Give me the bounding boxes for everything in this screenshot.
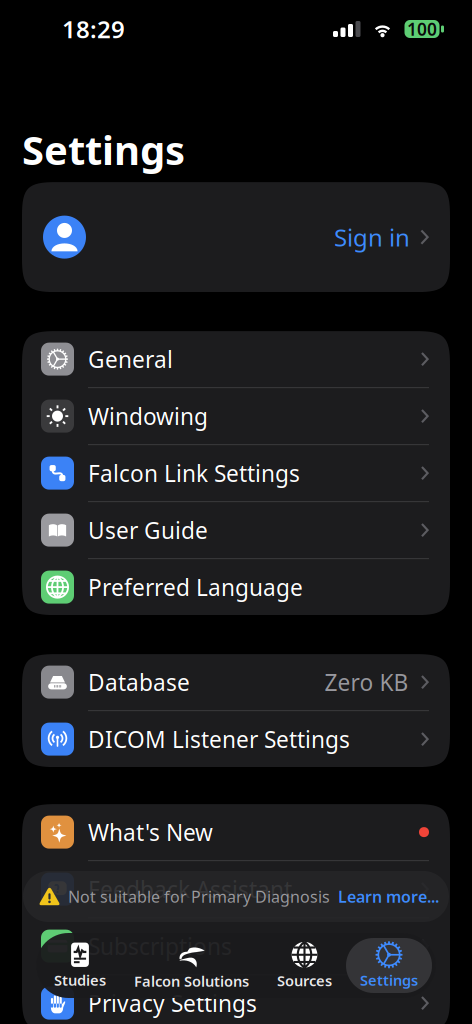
button[interactable]: Not suitable for Primary Diagnosis — [0, 871, 472, 933]
staticText: Studies — [54, 970, 106, 990]
staticText: Privacy Settings — [88, 988, 257, 1018]
staticText: General — [88, 344, 173, 374]
staticText: User Guide — [88, 515, 208, 545]
button[interactable]: What's New — [22, 804, 450, 860]
button[interactable]: Falcon Solutions — [120, 938, 263, 993]
button[interactable]: Sources — [263, 938, 346, 993]
staticText: Sources — [277, 971, 332, 990]
staticText: What's New — [88, 817, 213, 847]
staticText: 100 — [407, 17, 437, 40]
staticText: Not suitable for Primary Diagnosis — [68, 886, 330, 907]
button[interactable]: Subscriptions — [22, 918, 450, 974]
button[interactable]: Studies — [40, 938, 120, 993]
staticText: Database — [88, 667, 190, 697]
staticText: Subscriptions — [88, 931, 232, 961]
staticText: Sign in — [334, 221, 410, 253]
button[interactable]: Windowing — [22, 388, 450, 444]
button[interactable]: Privacy Settings — [22, 975, 450, 1024]
button[interactable]: Settings — [346, 938, 432, 993]
staticText: Settings — [360, 970, 418, 990]
button[interactable]: Sign in — [0, 182, 472, 292]
staticText: Feedback Assistant — [88, 874, 292, 904]
button[interactable]: DICOM Listener Settings — [22, 711, 450, 767]
button[interactable]: Falcon Link Settings — [22, 445, 450, 501]
staticText: Preferred Language — [88, 572, 303, 602]
button[interactable]: Preferred Language — [22, 559, 450, 615]
staticText: Windowing — [88, 401, 208, 431]
staticText: DICOM Listener Settings — [88, 724, 350, 754]
staticText: Settings — [22, 123, 185, 176]
staticText: 18:29 — [62, 13, 125, 45]
button[interactable]: User Guide — [22, 502, 450, 558]
button[interactable]: Feedback Assistant — [22, 861, 450, 917]
button[interactable]: General — [22, 331, 450, 387]
staticText: Learn more... — [338, 886, 439, 907]
button[interactable]: Database — [22, 654, 450, 710]
staticText: Falcon Link Settings — [88, 458, 300, 488]
staticText: Falcon Solutions — [134, 971, 249, 991]
staticText: Zero KB — [325, 667, 409, 697]
